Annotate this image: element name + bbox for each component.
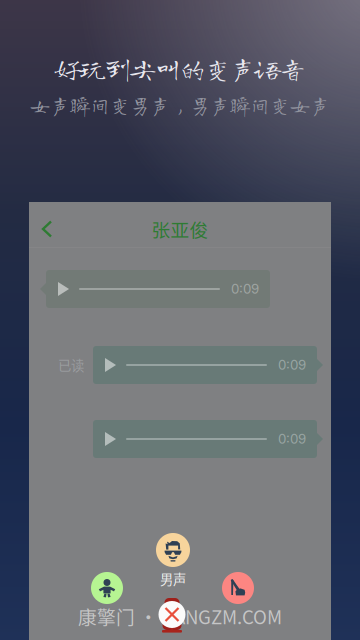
staticText: 已读 — [58, 355, 84, 375]
staticText: 0:09 — [278, 431, 306, 447]
staticText: 0:09 — [278, 357, 306, 373]
staticText: 好玩到尖叫的变声语音 — [55, 56, 305, 81]
button[interactable]: Back — [29, 202, 63, 248]
button[interactable]: Female voice — [222, 572, 254, 604]
staticText: 康擎门 · KANGZM.COM — [78, 602, 282, 629]
button[interactable]: Play voice message — [93, 420, 317, 458]
staticText: 张亚俊 — [151, 215, 208, 242]
button[interactable]: Baby voice — [91, 572, 123, 604]
button[interactable]: 男声 — [143, 533, 203, 588]
staticText: 0:09 — [231, 281, 259, 297]
button[interactable]: Play voice message — [93, 346, 317, 384]
staticText: 男声 — [160, 569, 186, 588]
button[interactable]: Play voice message — [46, 270, 270, 308]
staticText: 女声瞬间变男声，男声瞬间变女声 — [30, 95, 330, 115]
